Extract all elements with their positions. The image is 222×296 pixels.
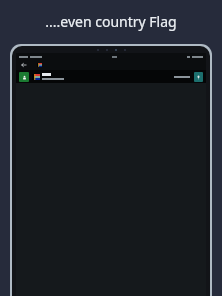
staticText: ....even country Flag bbox=[45, 12, 177, 31]
button[interactable]: Back bbox=[20, 61, 28, 69]
button[interactable]: Country flag bbox=[35, 61, 43, 69]
button[interactable]: Record voice message bbox=[16, 70, 206, 83]
button[interactable]: Record voice message bbox=[194, 72, 203, 82]
